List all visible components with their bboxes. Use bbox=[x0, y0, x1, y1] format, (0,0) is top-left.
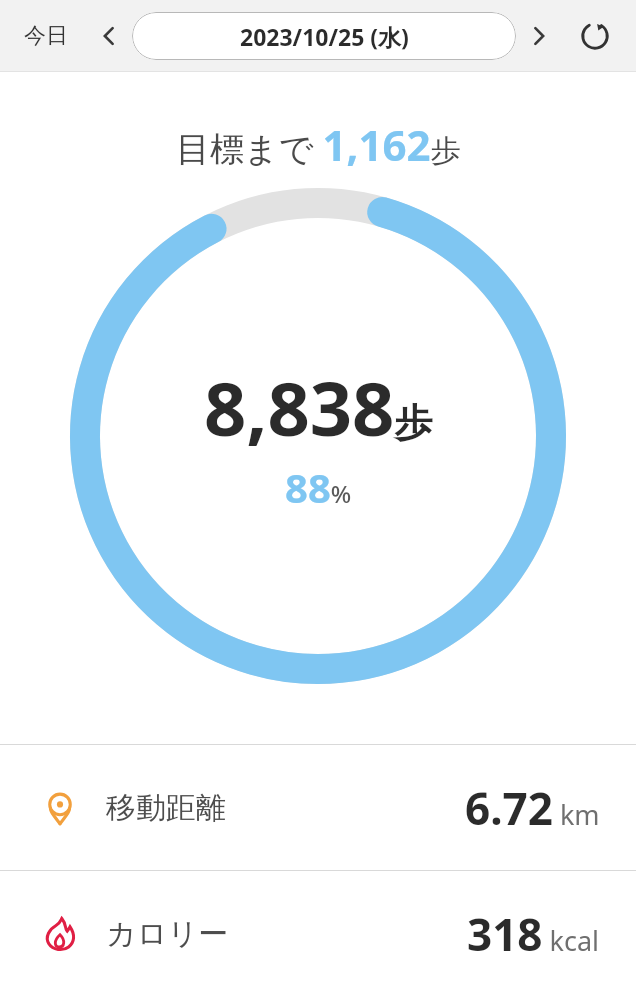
staticText: 今日 bbox=[24, 22, 68, 50]
staticText: 318 kcal bbox=[467, 904, 600, 964]
staticText: 2023/10/25 (水) bbox=[240, 21, 409, 52]
button[interactable]: 移動距離 bbox=[0, 745, 636, 870]
button[interactable]: カロリー bbox=[0, 871, 636, 996]
staticText: 目標まで 1,162歩 bbox=[176, 116, 461, 173]
button[interactable]: 前の日 bbox=[88, 15, 130, 57]
staticText: カロリー bbox=[106, 915, 229, 953]
button[interactable]: 今日 bbox=[18, 16, 74, 56]
staticText: 移動距離 bbox=[106, 789, 226, 827]
button[interactable]: 次の日 bbox=[518, 15, 560, 57]
staticText: 8,838歩 bbox=[204, 357, 433, 458]
staticText: 88% bbox=[285, 460, 352, 514]
button[interactable]: 2023/10/25 (水) bbox=[132, 12, 516, 60]
staticText: 6.72 km bbox=[465, 778, 600, 838]
button[interactable]: 更新 bbox=[572, 13, 618, 59]
